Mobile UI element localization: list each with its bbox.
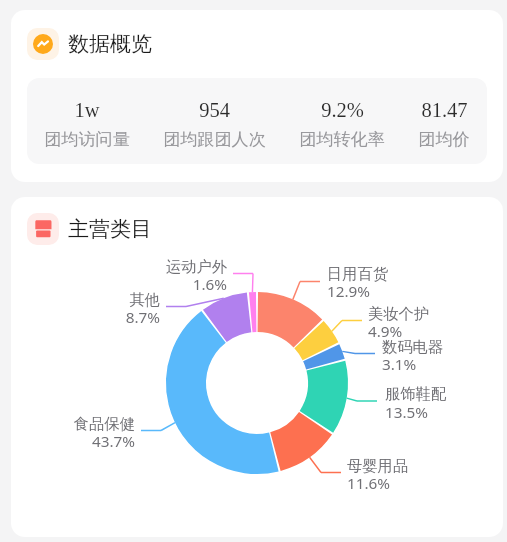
staticText: 数码电器 [382, 337, 503, 356]
staticText: 9.2% [321, 99, 364, 122]
staticText: 3.1% [382, 354, 503, 375]
staticText: 运动户外 [97, 257, 227, 276]
staticText: 服饰鞋配 [385, 384, 503, 403]
staticText: 团均访问量 [44, 129, 130, 151]
staticText: 43.7% [11, 431, 135, 452]
staticText: 团均价 [418, 129, 470, 151]
staticText: 美妆个护 [368, 304, 498, 323]
button[interactable]: 数据概览 [27, 28, 152, 60]
staticText: 8.7% [30, 307, 160, 328]
staticText: 数据概览 [68, 31, 152, 57]
staticText: 11.6% [347, 473, 477, 494]
button[interactable]: 1w [44, 99, 130, 151]
staticText: 1w [74, 99, 100, 122]
staticText: 日用百货 [327, 264, 457, 283]
staticText: 12.9% [327, 281, 457, 302]
staticText: 13.5% [385, 402, 503, 423]
staticText: 1.6% [97, 274, 227, 295]
staticText: 4.9% [368, 321, 498, 342]
staticText: 其他 [30, 290, 160, 309]
staticText: 主营类目 [68, 216, 152, 242]
staticText: 食品保健 [11, 414, 135, 433]
staticText: 团均跟团人次 [163, 129, 266, 151]
button[interactable]: 81.47 [418, 99, 470, 151]
other: 主营类目占比饼图 [11, 197, 503, 537]
staticText: 母婴用品 [347, 456, 477, 475]
staticText: 81.47 [421, 99, 468, 122]
button[interactable]: 954 [163, 99, 266, 151]
button[interactable]: 9.2% [299, 99, 385, 151]
staticText: 团均转化率 [299, 129, 385, 151]
staticText: 954 [199, 99, 230, 122]
button[interactable]: 主营类目 [27, 213, 152, 245]
